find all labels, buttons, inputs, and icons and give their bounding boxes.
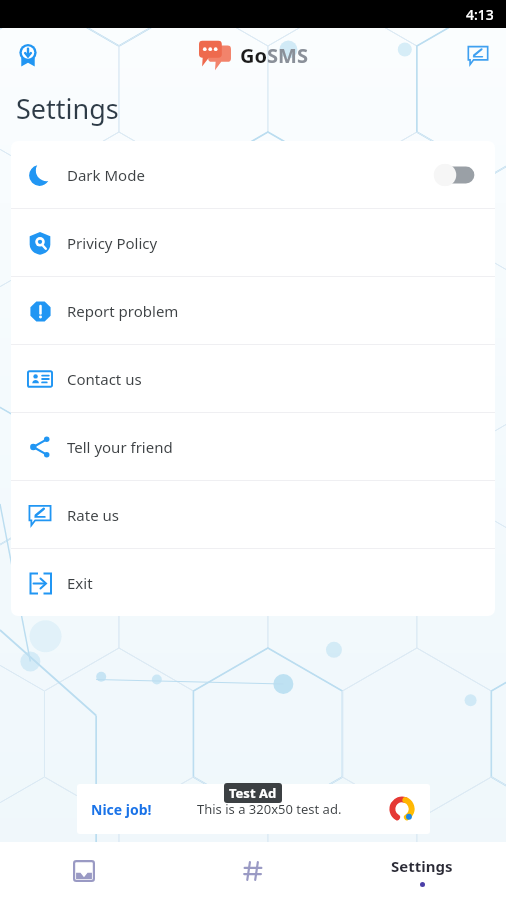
button[interactable]: Rewards xyxy=(8,35,48,75)
staticText: Dark Mode xyxy=(67,165,145,185)
staticText: Report problem xyxy=(67,301,179,321)
staticText: Contact us xyxy=(67,369,142,389)
button[interactable]: Contact us xyxy=(11,345,495,413)
button[interactable]: Report problem xyxy=(11,277,495,345)
button[interactable]: Rate us xyxy=(11,481,495,549)
staticText: Settings xyxy=(391,856,453,876)
staticText: SMS xyxy=(267,42,308,69)
staticText: This is a 320x50 test ad. xyxy=(197,800,342,818)
staticText: Test Ad xyxy=(229,784,277,802)
staticText: Rate us xyxy=(67,505,119,525)
staticText: Tell your friend xyxy=(67,437,173,457)
button[interactable]: Exit xyxy=(11,549,495,616)
button[interactable]: Tell your friend xyxy=(11,413,495,481)
button[interactable]: Tags xyxy=(168,842,337,900)
staticText: Exit xyxy=(67,573,93,593)
button[interactable]: Privicy Policy xyxy=(11,209,495,277)
staticText: Settings xyxy=(16,90,119,127)
staticText: Go xyxy=(240,42,267,69)
staticText: 4:13 xyxy=(466,5,494,24)
button[interactable]: Dark Mode xyxy=(11,141,495,209)
button[interactable]: Compose message xyxy=(458,35,498,75)
button[interactable]: Messages xyxy=(0,842,168,900)
staticText: Privicy Policy xyxy=(67,233,158,253)
staticText: Nice job! xyxy=(91,800,152,819)
button[interactable]: Nice job! xyxy=(77,784,430,834)
button[interactable]: Settings xyxy=(337,842,506,900)
